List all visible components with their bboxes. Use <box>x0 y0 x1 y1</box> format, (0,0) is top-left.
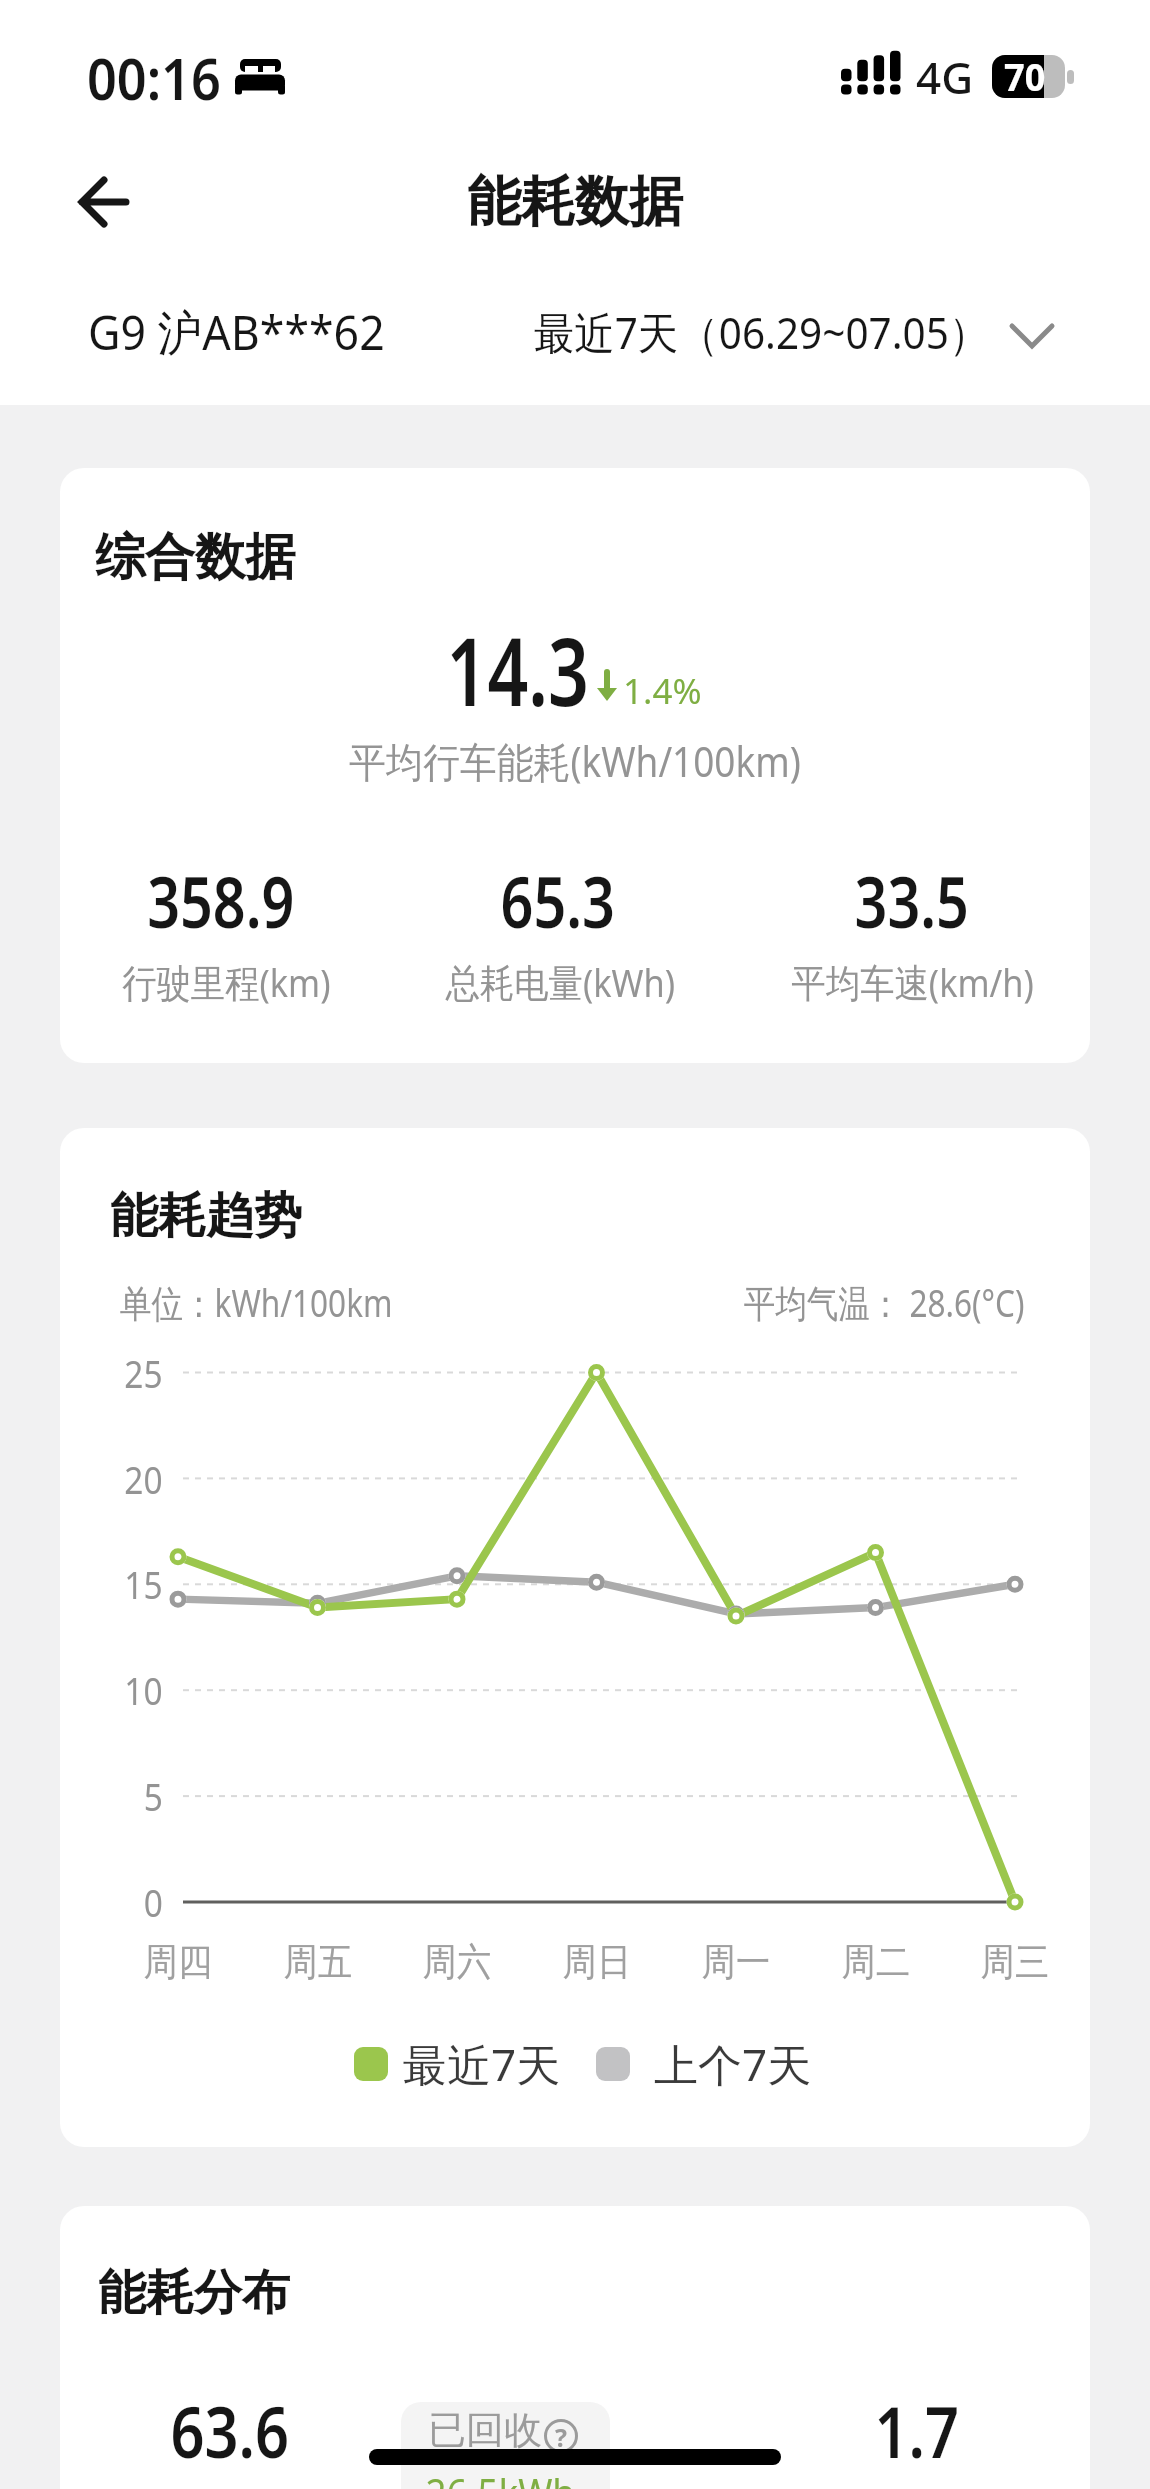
staticText: 63.6 <box>170 2383 289 2478</box>
staticText: 00:16 <box>87 38 221 117</box>
staticText: 4G <box>916 47 974 107</box>
staticText: 能耗分布 <box>98 2263 290 2323</box>
staticText: 25 <box>124 1347 163 1399</box>
staticText: 14.3 <box>447 606 589 734</box>
staticText: 周六 <box>423 1938 491 1986</box>
staticText: 周五 <box>284 1938 352 1986</box>
button[interactable] <box>500 295 1070 375</box>
staticText: 平均车速(km/h) <box>792 955 1034 1008</box>
staticText: 10 <box>124 1664 163 1716</box>
staticText: 20 <box>124 1453 163 1505</box>
staticText: 行驶里程(km) <box>122 955 331 1008</box>
staticText: 最近7天（06.29~07.05） <box>534 302 990 362</box>
staticText: 70 <box>1004 50 1046 102</box>
staticText: 5 <box>144 1770 163 1822</box>
staticText: 周日 <box>563 1938 631 1986</box>
staticText: 周一 <box>702 1938 770 1986</box>
staticText: 单位：kWh/100km <box>120 1276 393 1328</box>
staticText: 总耗电量(kWh) <box>446 955 675 1008</box>
staticText: G9 沪AB***62 <box>88 299 386 365</box>
staticText: 平均行车能耗(kWh/100km) <box>349 733 801 789</box>
staticText: 周四 <box>144 1938 212 1986</box>
staticText: ? <box>555 2420 567 2454</box>
staticText: 65.3 <box>501 853 615 948</box>
staticText: 1.4% <box>623 667 702 715</box>
staticText: 平均气温： 28.6(°C) <box>744 1276 1025 1328</box>
staticText: 26.5kWh <box>425 2465 575 2489</box>
button[interactable] <box>60 160 150 250</box>
staticText: 综合数据 <box>95 526 295 589</box>
staticText: 1.7 <box>874 2383 959 2478</box>
staticText: 最近7天 <box>403 2034 561 2094</box>
staticText: 已回收 <box>428 2406 542 2454</box>
staticText: 能耗数据 <box>467 168 683 236</box>
staticText: 33.5 <box>855 853 969 948</box>
button[interactable] <box>401 2402 610 2489</box>
staticText: 0 <box>144 1876 163 1928</box>
staticText: 15 <box>124 1558 163 1610</box>
staticText: 周二 <box>842 1938 910 1986</box>
staticText: 358.9 <box>147 853 295 948</box>
staticText: 上个7天 <box>654 2034 812 2094</box>
staticText: 周三 <box>981 1938 1049 1986</box>
staticText: 能耗趋势 <box>110 1186 302 1246</box>
